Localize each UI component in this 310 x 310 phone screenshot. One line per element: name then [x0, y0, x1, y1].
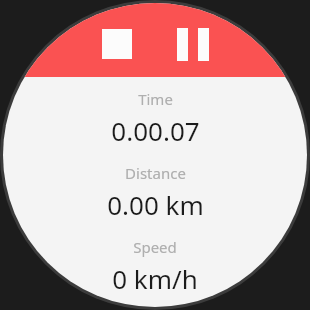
- staticText: 0 km/h: [112, 261, 198, 296]
- button[interactable]: Distance: [3, 163, 307, 222]
- button[interactable]: Pause: [166, 17, 220, 71]
- button[interactable]: Stop: [90, 17, 144, 71]
- staticText: Speed: [133, 237, 177, 257]
- staticText: Time: [138, 89, 173, 109]
- staticText: Distance: [125, 163, 186, 183]
- button[interactable]: Time: [3, 89, 307, 148]
- staticText: 0.00.07: [111, 113, 200, 148]
- staticText: 0.00 km: [107, 187, 204, 222]
- button[interactable]: Speed: [3, 237, 307, 296]
